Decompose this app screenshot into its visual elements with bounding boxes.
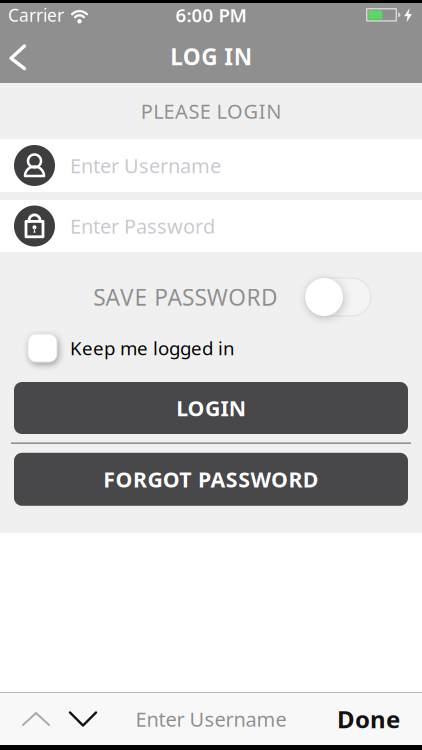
staticText: LOGIN — [176, 394, 246, 422]
staticText: Done — [337, 703, 400, 735]
button[interactable]: Keep me logged in — [28, 334, 57, 362]
staticText: Keep me logged in — [70, 336, 235, 360]
staticText: SAVE PASSWORD — [93, 282, 278, 312]
button[interactable]: LOGIN — [14, 382, 408, 434]
button[interactable]: Next field — [68, 711, 106, 727]
staticText: PLEASE LOGIN — [141, 98, 281, 124]
staticText: Enter Username — [70, 152, 221, 179]
button[interactable]: FORGOT PASSWORD — [14, 453, 408, 506]
button[interactable]: Enter Username — [0, 139, 422, 192]
staticText: Carrier — [8, 3, 64, 26]
button[interactable]: Done — [337, 703, 422, 735]
staticText: FORGOT PASSWORD — [103, 465, 319, 493]
button[interactable]: Back — [0, 42, 27, 71]
staticText: Enter Username — [135, 706, 286, 732]
button[interactable]: Save Password — [305, 278, 371, 316]
staticText: LOG IN — [170, 41, 252, 71]
staticText: 6:00 PM — [175, 3, 246, 27]
button[interactable]: Enter Password — [0, 200, 422, 252]
button[interactable]: Previous field — [0, 711, 68, 726]
staticText: Enter Password — [70, 213, 215, 239]
